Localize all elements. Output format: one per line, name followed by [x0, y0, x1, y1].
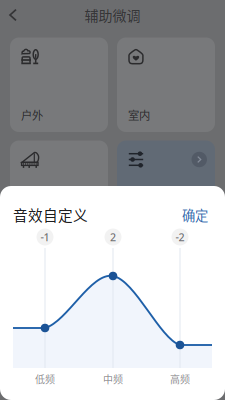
staticText: -2	[175, 230, 184, 244]
staticText: 高频	[170, 372, 190, 386]
button[interactable]: 确定	[178, 202, 212, 227]
staticText: 低频	[35, 372, 55, 386]
staticText: 确定	[182, 205, 208, 224]
button[interactable]: 室内	[117, 37, 215, 132]
staticText: 2	[110, 230, 116, 244]
staticText: 户外	[21, 107, 43, 123]
button[interactable]	[117, 140, 215, 235]
staticText: 室内	[128, 107, 150, 123]
staticText: -1	[40, 230, 49, 244]
staticText: 中频	[103, 372, 123, 386]
button[interactable]	[10, 140, 108, 235]
button[interactable]: 户外	[10, 37, 108, 132]
staticText: 音效自定义	[13, 204, 88, 225]
staticText: 辅助微调	[84, 5, 140, 25]
button[interactable]: Back	[0, 4, 25, 26]
